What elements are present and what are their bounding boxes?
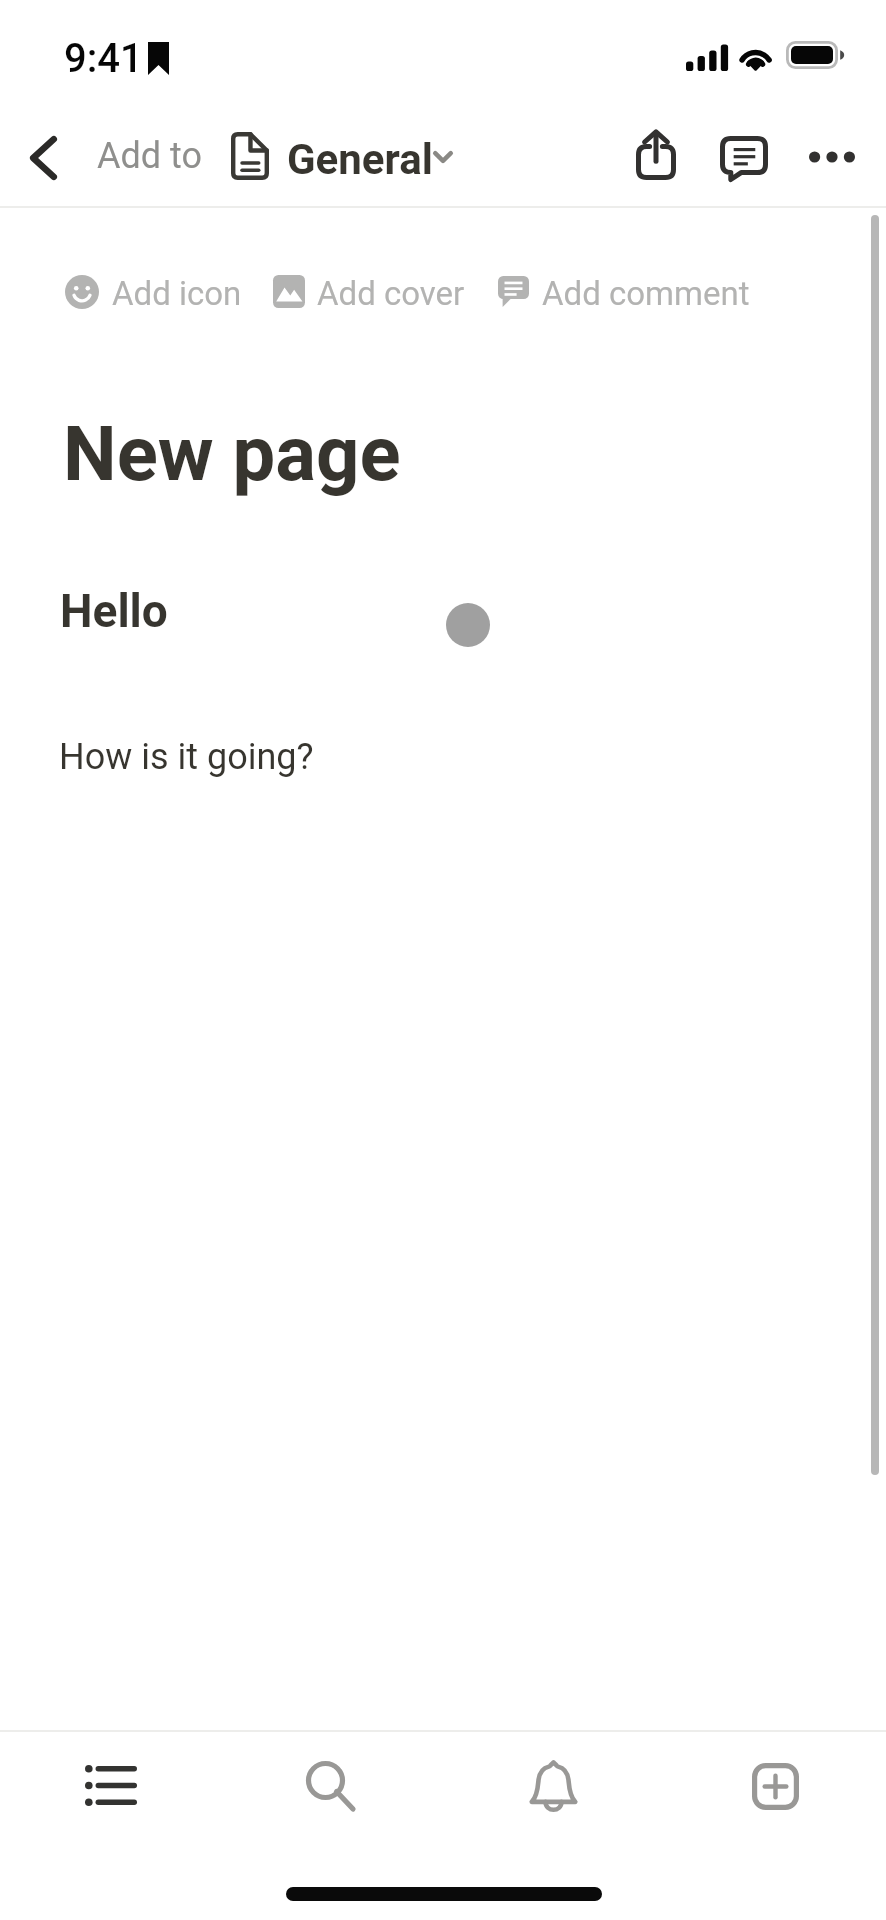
staticText: Add to (97, 135, 202, 177)
button[interactable]: More options (789, 113, 875, 201)
staticText: New page (63, 409, 401, 498)
staticText: Add comment (542, 274, 750, 313)
staticText: General (287, 135, 433, 184)
button[interactable]: Add comment (490, 266, 760, 316)
button[interactable]: Add icon (58, 266, 248, 316)
button[interactable]: Comments (701, 113, 787, 201)
staticText: 9:41 (64, 35, 143, 82)
button[interactable]: Search (271, 1733, 385, 1843)
staticText: Add cover (317, 274, 465, 313)
staticText: How is it going? (59, 736, 314, 778)
button[interactable]: Pages (54, 1733, 168, 1843)
button[interactable]: New page (719, 1733, 833, 1843)
staticText: Add icon (112, 274, 242, 313)
button[interactable]: Add cover (265, 266, 475, 316)
staticText: Hello (60, 584, 168, 638)
button[interactable]: Back (8, 113, 94, 201)
button[interactable]: Add to (94, 120, 454, 194)
button[interactable]: Share (613, 113, 699, 201)
button[interactable]: Notifications (497, 1733, 611, 1843)
